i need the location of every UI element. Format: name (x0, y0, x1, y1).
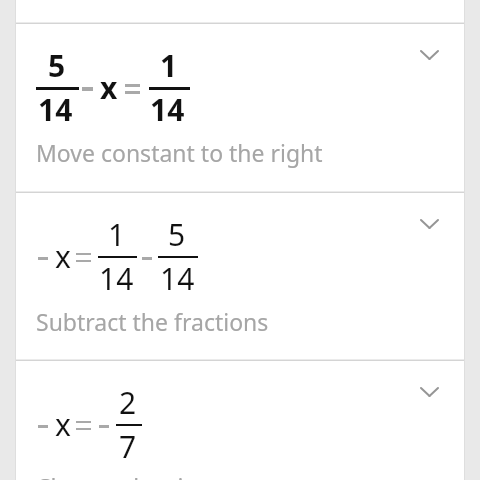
staticText: 14 (150, 89, 185, 130)
staticText: 14 (160, 258, 195, 299)
staticText: 5 (48, 45, 66, 86)
staticText: 2 (119, 382, 137, 423)
staticText: x (55, 404, 71, 445)
staticText: 5 (168, 214, 186, 255)
button[interactable]: Expand step (409, 35, 449, 75)
button[interactable]: Expand step (409, 204, 449, 244)
staticText: 7 (119, 426, 137, 467)
staticText: Change the signs (36, 471, 223, 480)
staticText: 14 (99, 258, 134, 299)
staticText: Move constant to the right (36, 137, 323, 168)
button[interactable]: x (16, 361, 464, 480)
button[interactable]: 5 (16, 24, 464, 191)
staticText: x (55, 236, 71, 277)
button[interactable]: x (16, 193, 464, 359)
staticText: Subtract the fractions (36, 306, 269, 337)
staticText: 1 (108, 214, 126, 255)
staticText: 14 (38, 89, 73, 130)
staticText: x (100, 67, 118, 108)
staticText: 1 (160, 45, 178, 86)
button[interactable]: Expand step (409, 372, 449, 412)
